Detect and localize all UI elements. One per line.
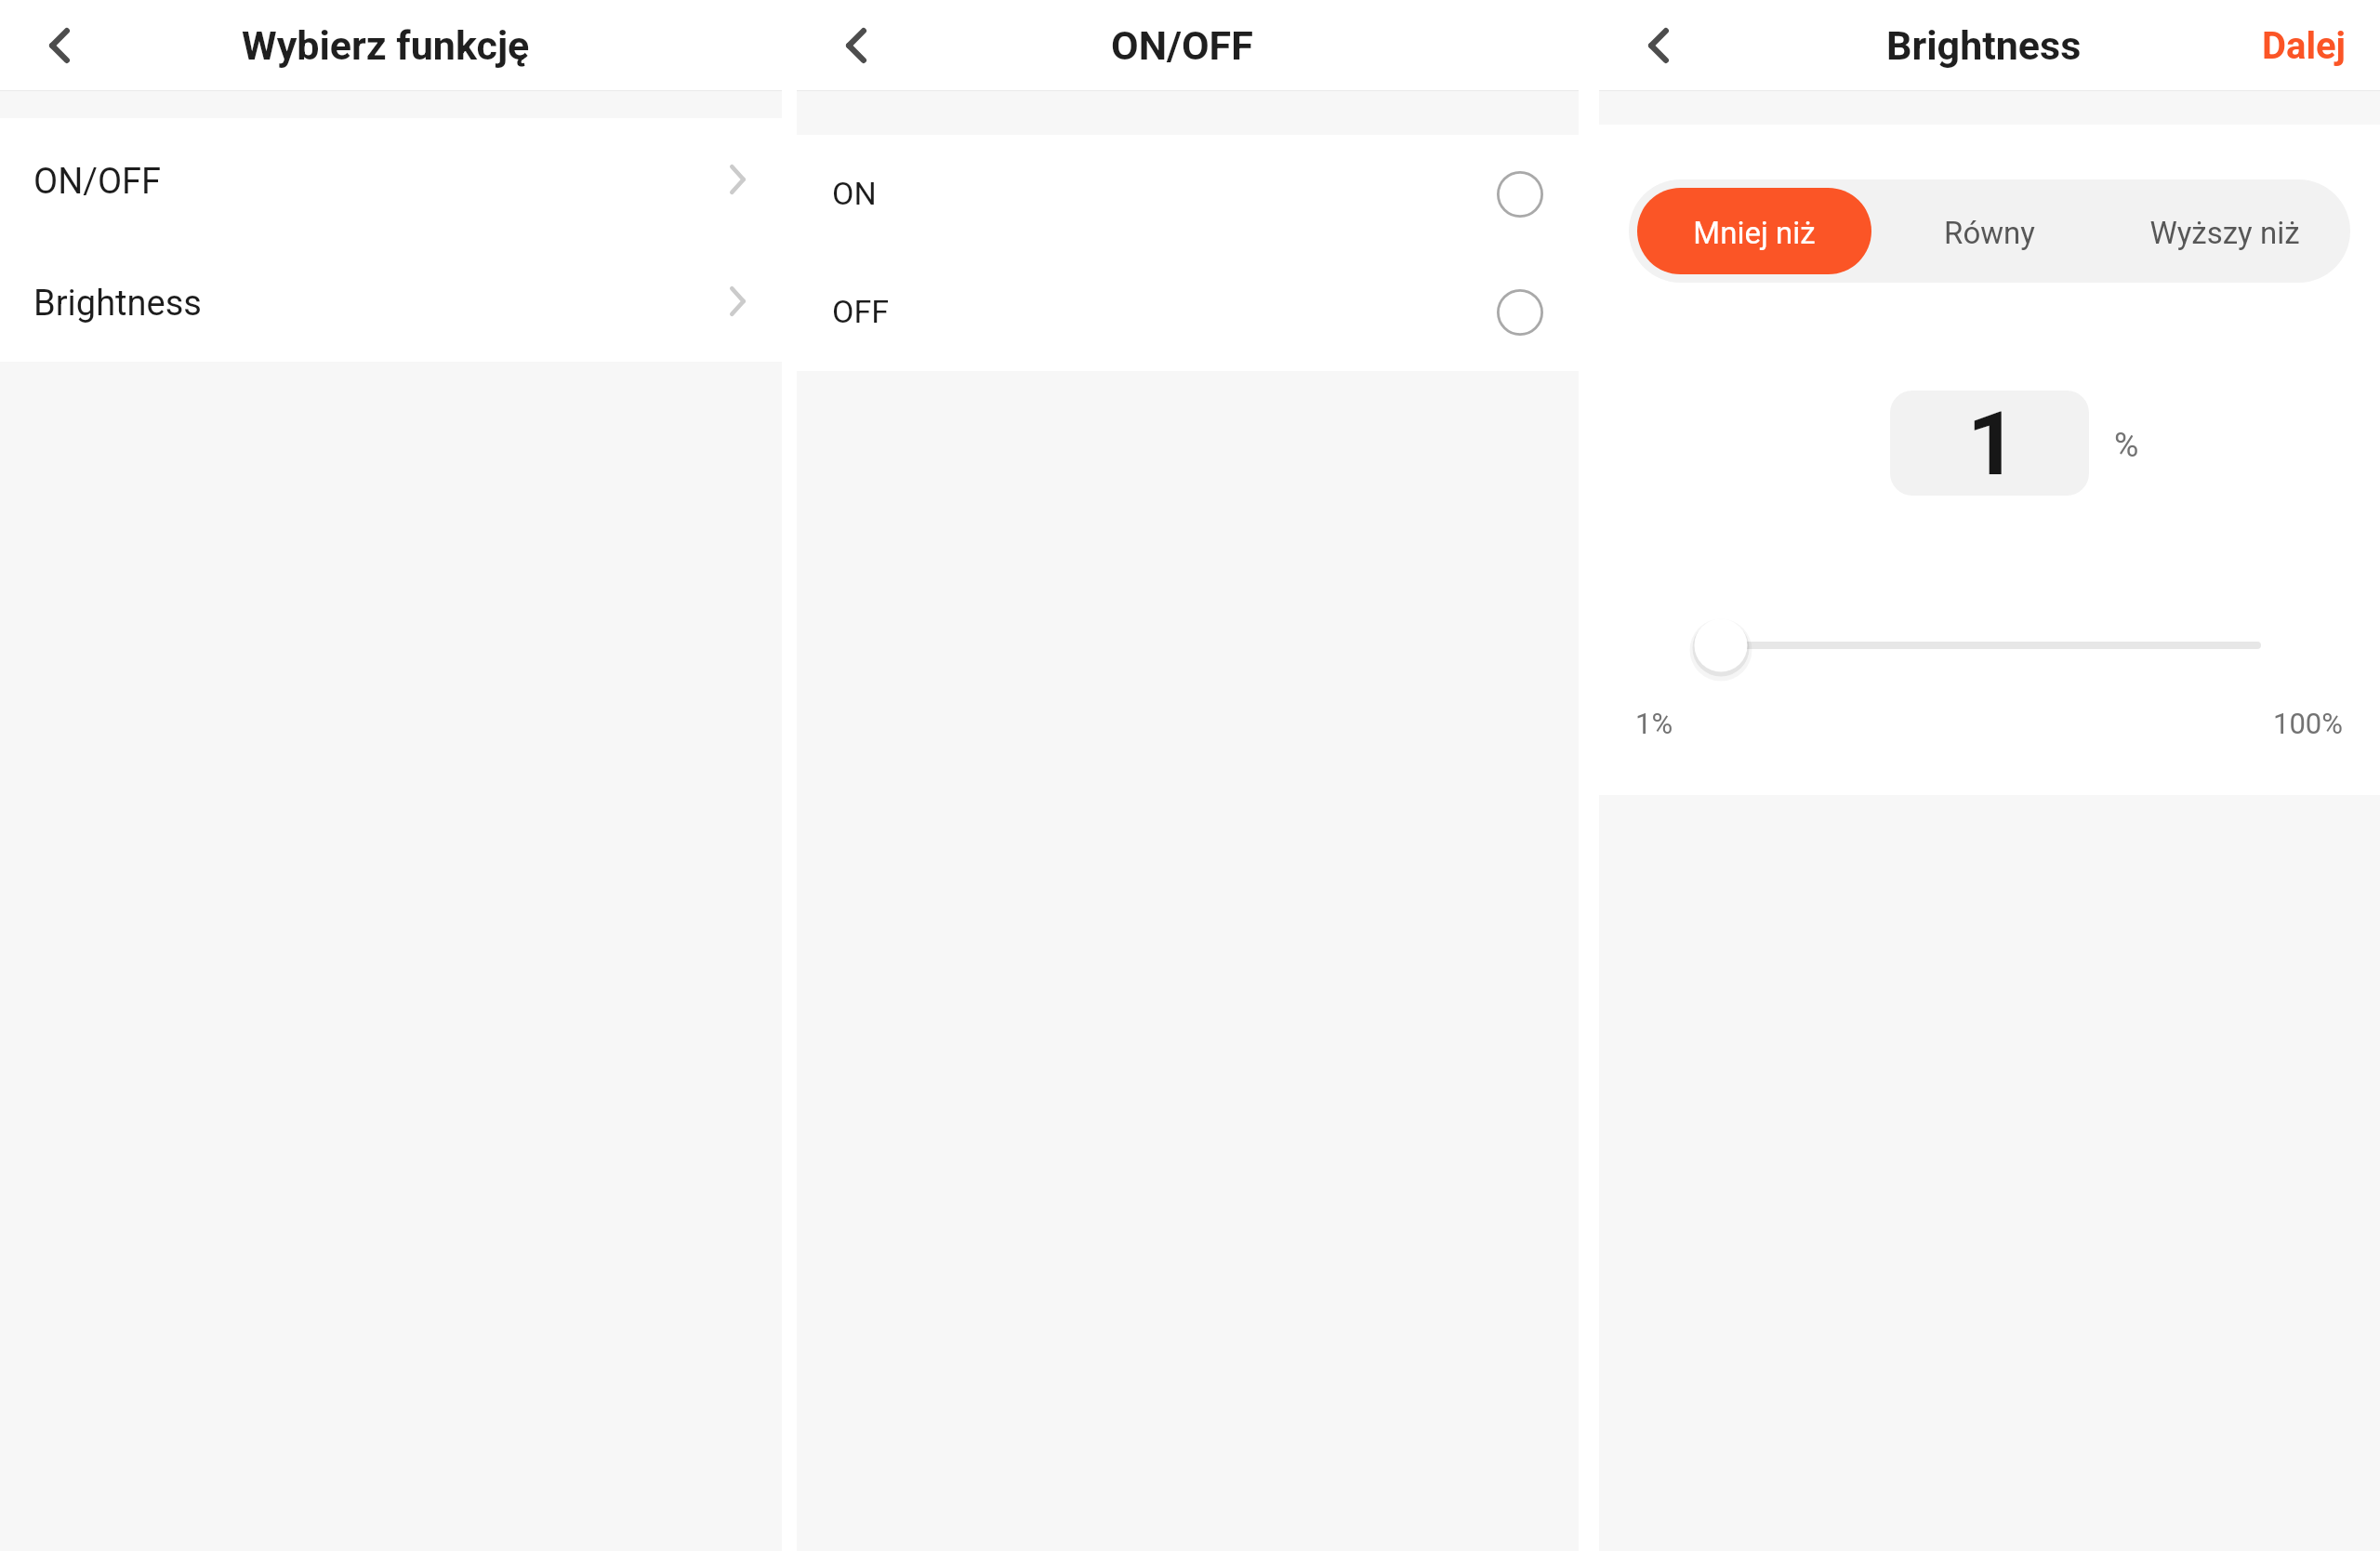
button[interactable]: OFF: [797, 253, 1579, 371]
button[interactable]: ON: [797, 135, 1579, 253]
staticText: %: [2114, 426, 2139, 465]
staticText: ON: [832, 175, 877, 212]
button[interactable]: Back: [1623, 10, 1694, 81]
button[interactable]: Równy: [1871, 188, 2107, 274]
button[interactable]: Mniej niż: [1637, 188, 1871, 274]
staticText: ON/OFF: [33, 161, 162, 203]
staticText: Równy: [1944, 215, 2035, 251]
button[interactable]: Back: [24, 10, 95, 81]
staticText: 1%: [1635, 707, 1673, 740]
button[interactable]: Brightness: [0, 240, 782, 362]
staticText: 100%: [2273, 707, 2343, 740]
staticText: Brightness: [1886, 22, 2082, 69]
staticText: Dalej: [2262, 24, 2346, 68]
button[interactable]: Dalej: [2228, 0, 2380, 91]
button[interactable]: ON/OFF: [0, 118, 782, 240]
staticText: Wyższy niż: [2149, 215, 2300, 251]
button[interactable]: Brightness slider: [1635, 619, 2347, 671]
button[interactable]: 1: [1890, 391, 2089, 496]
staticText: Wybierz funkcję: [242, 22, 530, 69]
staticText: Brightness: [33, 283, 202, 325]
staticText: OFF: [832, 293, 889, 330]
staticText: ON/OFF: [1111, 22, 1253, 69]
button[interactable]: Back: [821, 10, 892, 81]
staticText: Mniej niż: [1693, 215, 1816, 251]
button[interactable]: Wyższy niż: [2107, 188, 2342, 274]
staticText: 1: [1967, 393, 2017, 496]
